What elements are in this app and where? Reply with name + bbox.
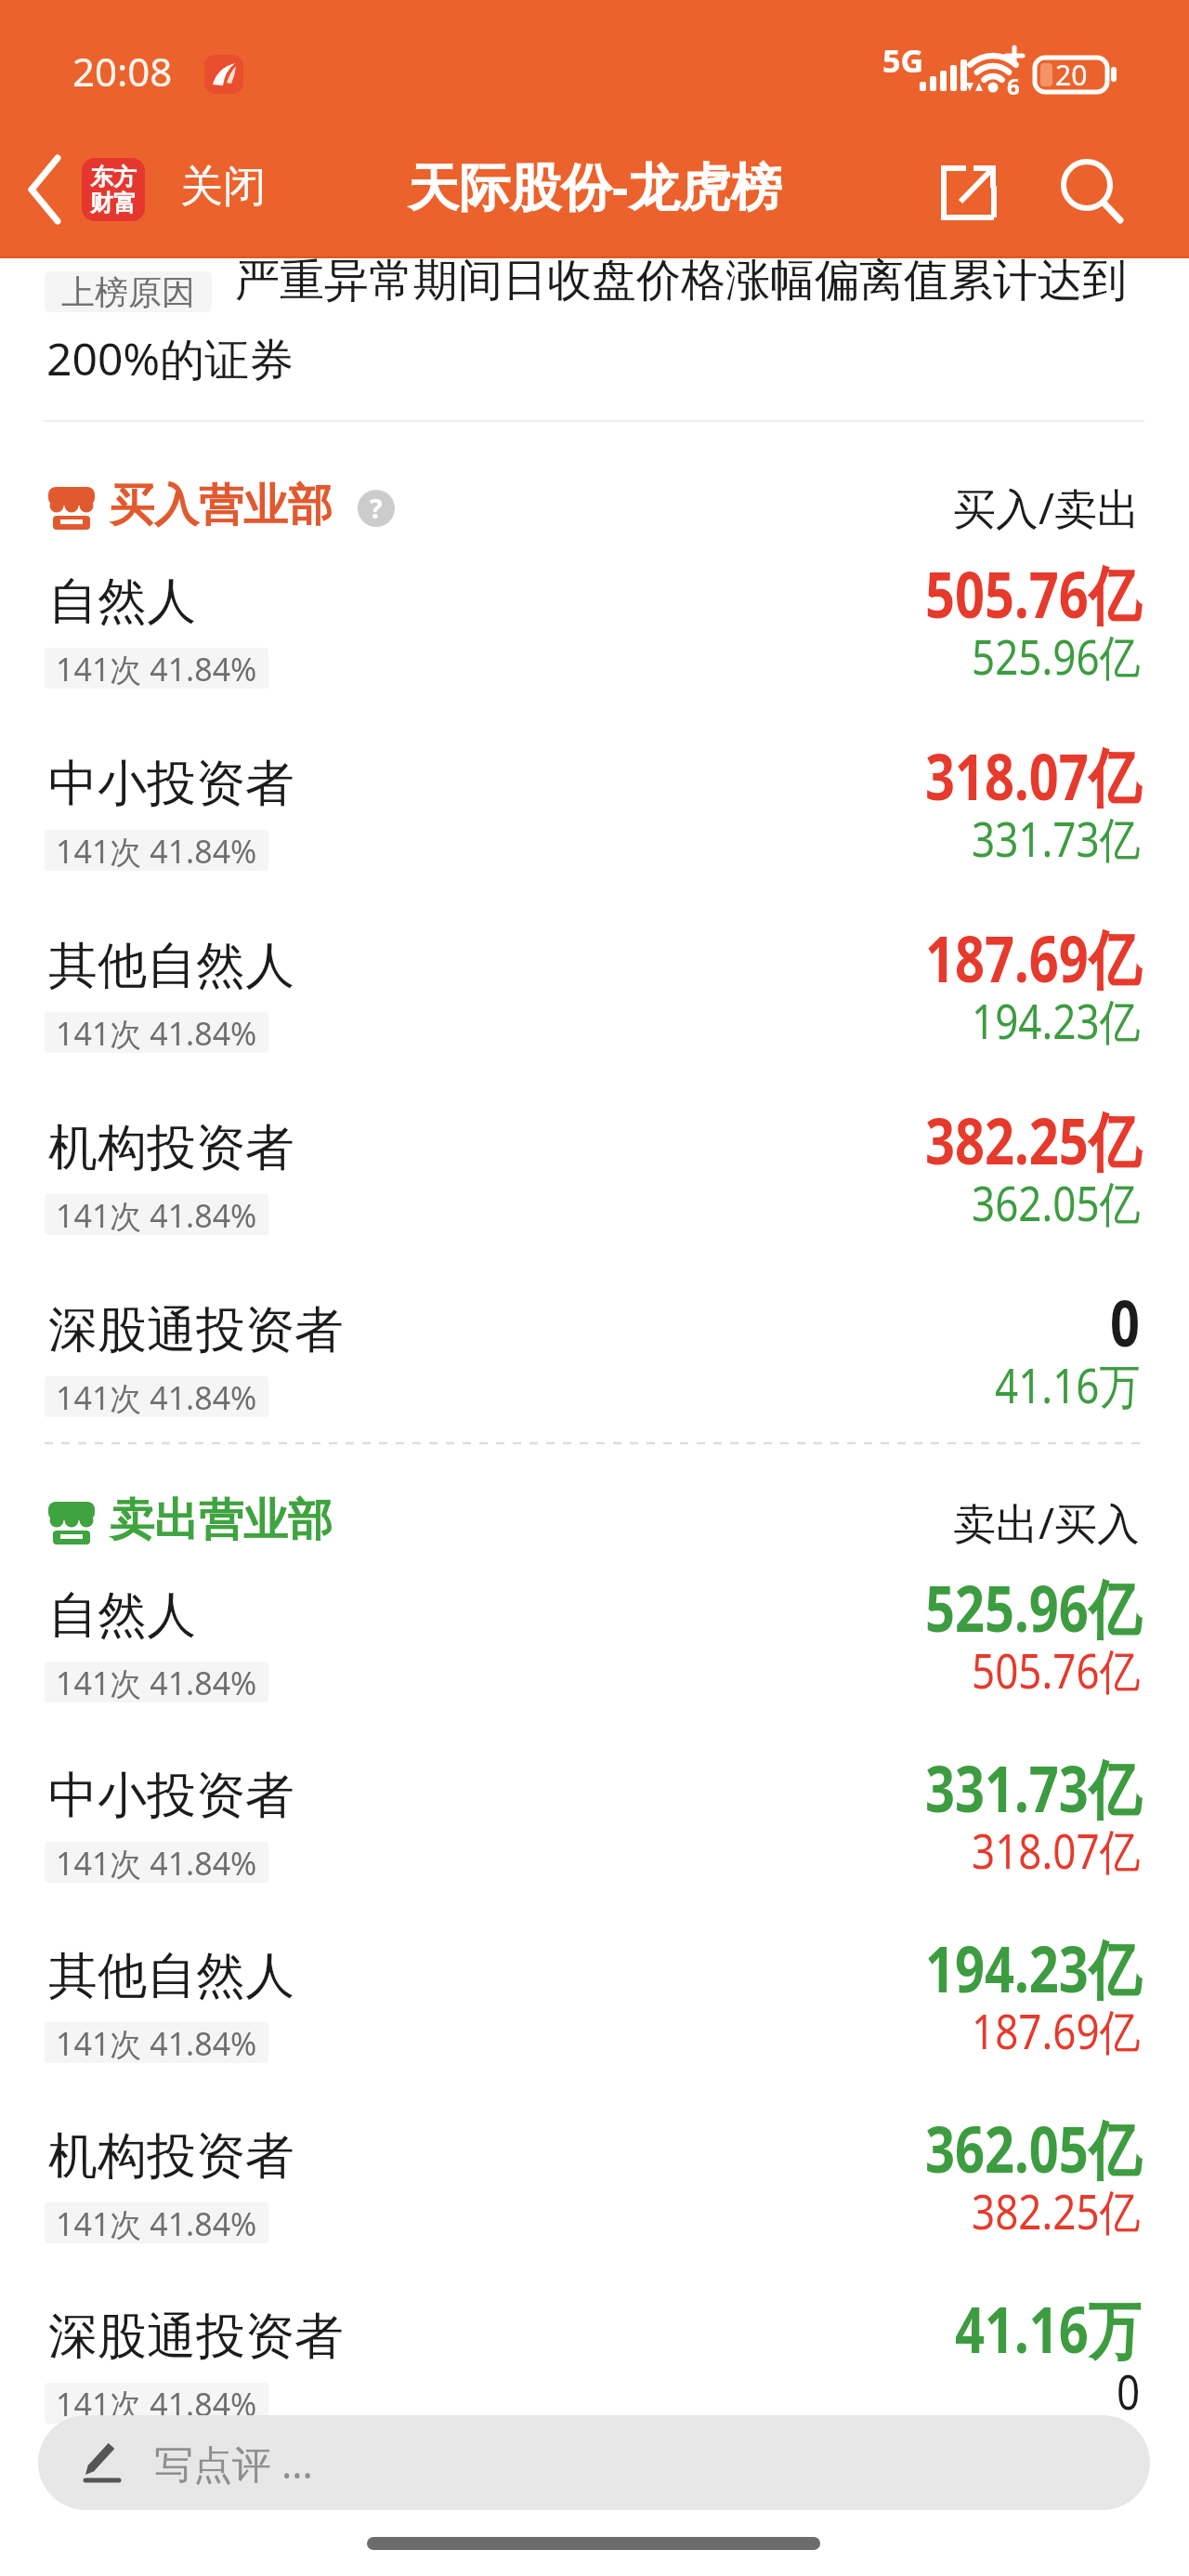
staticText: 机构投资者 — [48, 1117, 294, 1179]
staticText: 141次 41.84% — [56, 2202, 257, 2243]
staticText: 深股通投资者 — [48, 1299, 344, 1361]
staticText: 买入/卖出 — [953, 479, 1141, 537]
staticText: 20 — [1055, 56, 1088, 94]
staticText: 严重异常期间日收盘价格涨幅偏离值累计达到 — [235, 253, 1127, 309]
staticText: 194.23亿 — [972, 987, 1141, 1053]
staticText: 其他自然人 — [48, 935, 294, 997]
staticText: ? — [370, 491, 383, 526]
staticText: 中小投资者 — [48, 1765, 294, 1827]
staticText: 362.05亿 — [925, 2104, 1141, 2191]
button[interactable] — [38, 2415, 1150, 2510]
staticText: 5G — [882, 39, 924, 82]
staticText: 141次 41.84% — [56, 1376, 257, 1417]
staticText: 318.07亿 — [972, 1817, 1141, 1883]
staticText: 141次 41.84% — [56, 2022, 257, 2063]
staticText: 买入营业部 — [110, 478, 333, 533]
staticText: 中小投资者 — [48, 753, 294, 815]
staticText: 自然人 — [48, 571, 196, 633]
staticText: 0 — [1110, 1278, 1141, 1364]
staticText: 141次 41.84% — [56, 1842, 257, 1883]
staticText: 天际股份-龙虎榜 — [408, 151, 782, 220]
staticText: 深股通投资者 — [48, 2306, 344, 2368]
staticText: 141次 41.84% — [56, 1012, 257, 1053]
staticText: 41.16万 — [955, 2285, 1141, 2371]
staticText: 141次 41.84% — [56, 830, 257, 871]
button[interactable] — [28, 149, 74, 232]
button[interactable]: 关闭 — [180, 160, 266, 214]
staticText: 141次 41.84% — [56, 648, 257, 689]
staticText: 其他自然人 — [48, 1945, 294, 2007]
staticText: 525.96亿 — [925, 1564, 1141, 1650]
staticText: 141次 41.84% — [56, 2383, 257, 2424]
staticText: 上榜原因 — [61, 271, 195, 312]
staticText: 41.16万 — [995, 1352, 1141, 1418]
staticText: 卖出营业部 — [110, 1492, 333, 1548]
staticText: 187.69亿 — [925, 914, 1141, 1000]
staticText: 20:08 — [72, 45, 173, 98]
button[interactable]: ? — [358, 490, 395, 527]
staticText: 卖出/买入 — [953, 1493, 1141, 1552]
staticText: 0 — [1117, 2358, 1141, 2424]
staticText: 6 — [1007, 71, 1020, 101]
staticText: 362.05亿 — [972, 1170, 1141, 1235]
staticText: 写点评 ... — [154, 2437, 313, 2490]
staticText: 141次 41.84% — [56, 1662, 257, 1702]
staticText: 505.76亿 — [925, 550, 1141, 636]
staticText: 200%的证券 — [46, 328, 294, 389]
staticText: 东方 财富 — [90, 163, 137, 217]
staticText: 自然人 — [48, 1584, 196, 1647]
staticText: 318.07亿 — [925, 732, 1141, 818]
button[interactable] — [1053, 154, 1130, 230]
staticText: 331.73亿 — [972, 805, 1141, 871]
staticText: 141次 41.84% — [56, 1194, 257, 1235]
staticText: 187.69亿 — [972, 1998, 1141, 2063]
button[interactable]: 东方 财富 — [82, 158, 145, 221]
staticText: 525.96亿 — [972, 623, 1141, 689]
button[interactable] — [934, 158, 1003, 227]
staticText: 382.25亿 — [925, 1096, 1141, 1182]
staticText: 机构投资者 — [48, 2125, 294, 2188]
staticText: 331.73亿 — [925, 1744, 1141, 1830]
staticText: 382.25亿 — [972, 2178, 1141, 2244]
staticText: 194.23亿 — [925, 1924, 1141, 2010]
staticText: 505.76亿 — [972, 1637, 1141, 1703]
